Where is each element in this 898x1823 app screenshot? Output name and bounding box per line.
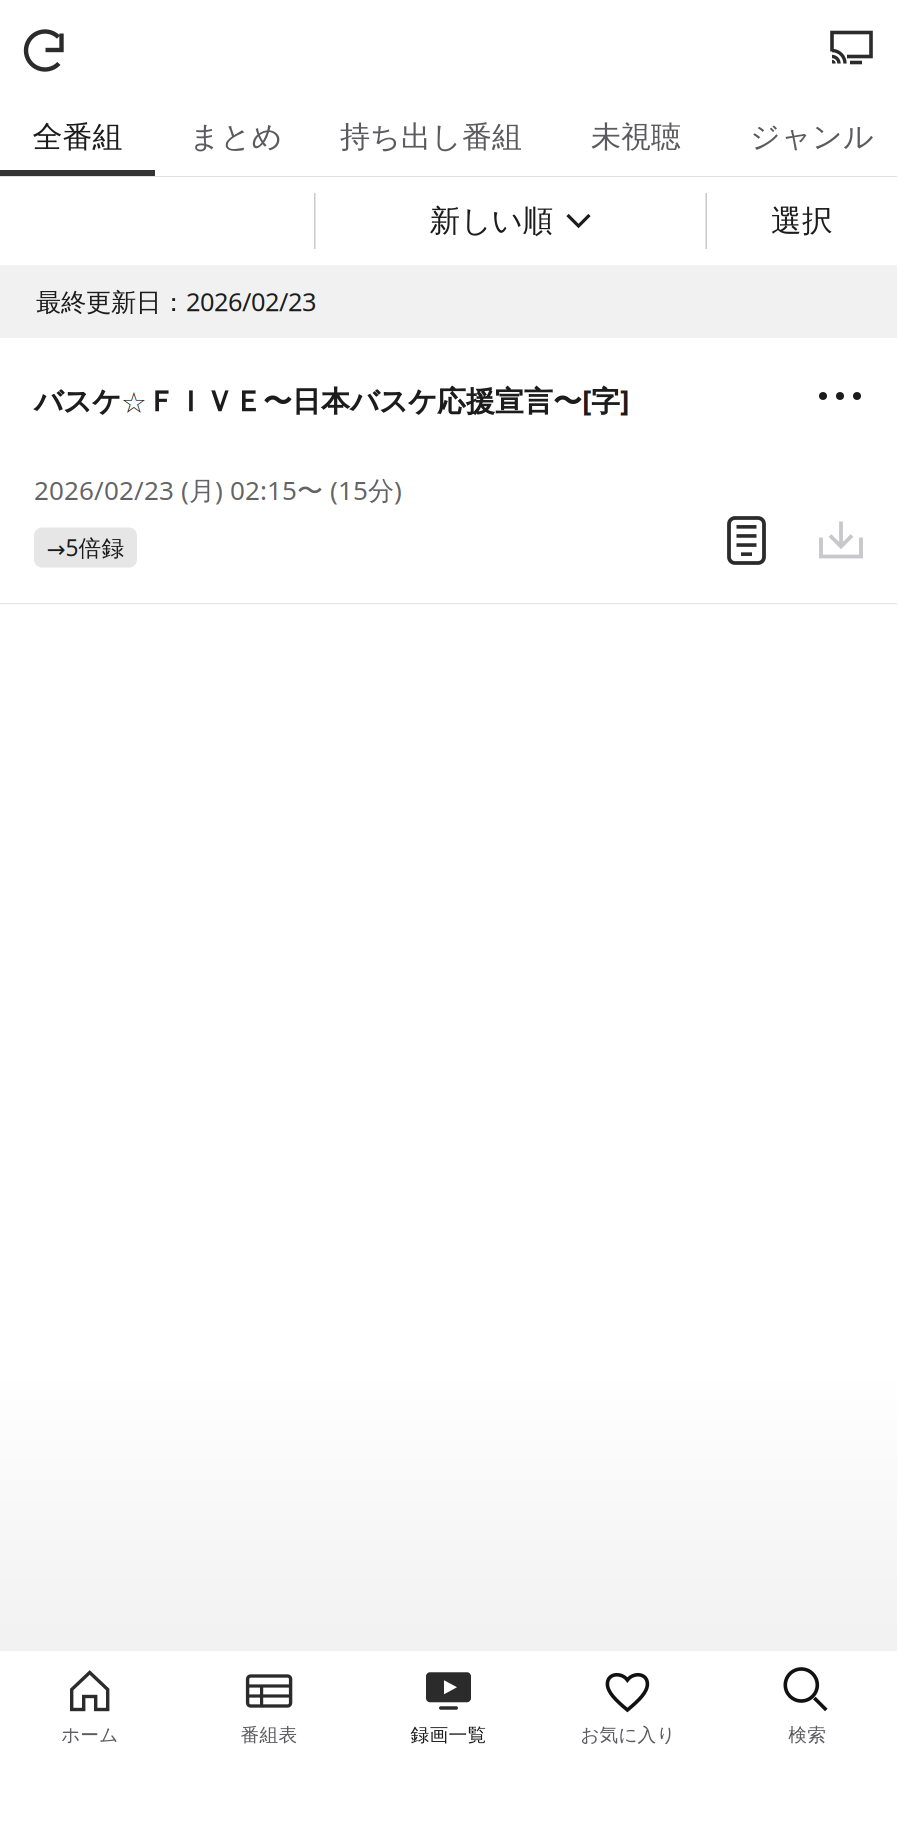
staticText: 持ち出し番組 [340, 118, 522, 156]
button[interactable]: お気に入り [538, 1651, 718, 1771]
staticText: 録画一覧 [410, 1723, 486, 1747]
button[interactable]: 新しい順 [315, 177, 705, 265]
button[interactable]: 持ち出し番組 [317, 97, 545, 177]
button[interactable]: 選択 [707, 177, 897, 265]
button[interactable]: 番組表 [179, 1651, 359, 1771]
button[interactable]: Cast to device [819, 12, 897, 84]
staticText: 番組表 [241, 1723, 298, 1747]
staticText: ジャンル [750, 118, 874, 156]
button[interactable]: 録画一覧 [359, 1651, 538, 1771]
staticText: →5倍録 [46, 532, 124, 563]
button[interactable]: More options [767, 338, 863, 463]
staticText: バスケ☆ＦＩＶＥ〜日本バスケ応援宣言〜[字] [34, 381, 629, 420]
staticText: まとめ [189, 118, 282, 156]
staticText: ホーム [61, 1723, 118, 1747]
staticText: お気に入り [580, 1723, 675, 1747]
button[interactable]: ジャンル [727, 97, 897, 177]
staticText: 未視聴 [591, 118, 681, 156]
staticText: 選択 [771, 202, 833, 240]
button[interactable]: Download [819, 517, 863, 563]
button[interactable]: Refresh [0, 7, 84, 89]
staticText: 検索 [788, 1723, 826, 1747]
staticText: 最終更新日：2026/02/23 [36, 284, 316, 319]
button[interactable]: ホーム [0, 1651, 179, 1771]
button[interactable]: まとめ [155, 97, 317, 177]
staticText: 新しい順 [429, 202, 553, 240]
button[interactable]: Program details [724, 517, 769, 563]
button[interactable]: 検索 [718, 1651, 897, 1771]
button[interactable]: 全番組 [0, 97, 155, 177]
button[interactable]: 未視聴 [545, 97, 727, 177]
staticText: 2026/02/23 (月) 02:15〜 (15分) [34, 472, 402, 508]
staticText: 全番組 [32, 118, 122, 156]
